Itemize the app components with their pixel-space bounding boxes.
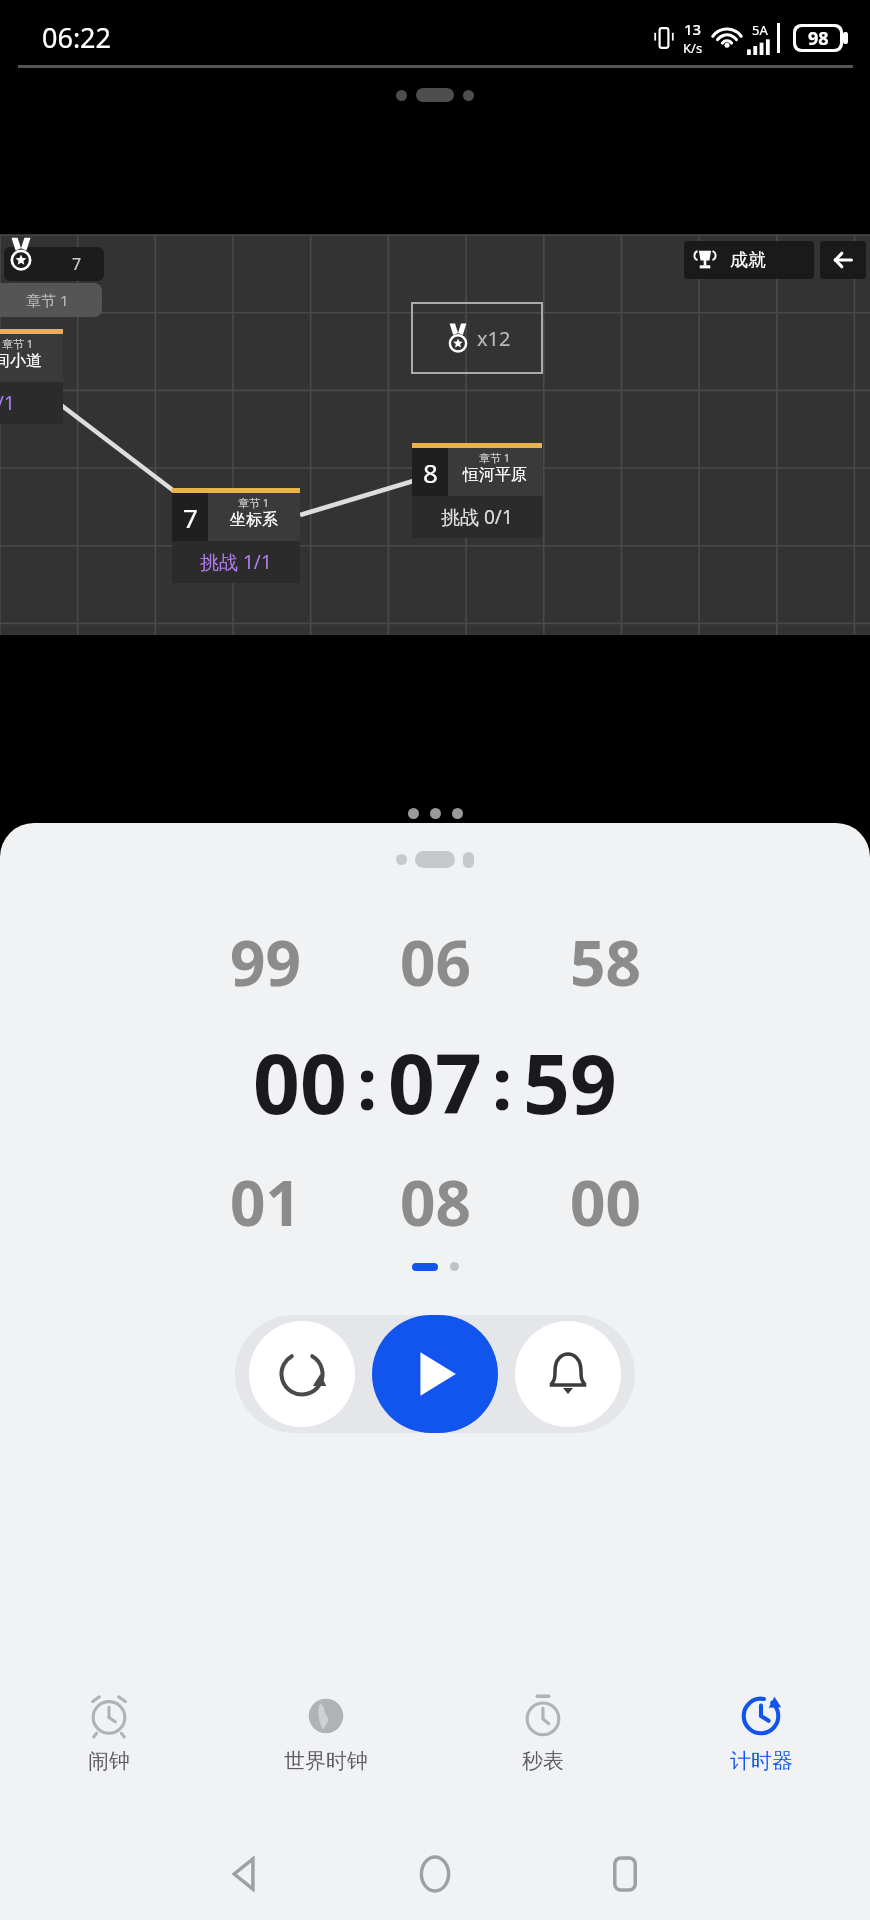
staticText: 挑战 0/1 — [441, 504, 513, 530]
staticText: : — [492, 1033, 513, 1131]
staticText: 00 — [570, 1160, 641, 1244]
staticText: 1/1 — [0, 390, 15, 416]
button[interactable]: 7 — [172, 488, 300, 583]
staticText: 章节 1 — [238, 495, 270, 510]
button[interactable]: Alarm sound — [515, 1321, 621, 1427]
staticText: 08 — [400, 1160, 471, 1244]
staticText: 06 — [400, 920, 471, 1004]
button[interactable]: 闹钟 — [0, 1678, 217, 1828]
button[interactable]: 计时器 — [652, 1678, 870, 1828]
staticText: 13 — [684, 19, 702, 39]
button[interactable]: Back — [820, 241, 866, 279]
button[interactable]: 秒表 — [434, 1678, 652, 1828]
button[interactable]: Recents — [580, 1829, 670, 1919]
button[interactable]: Start — [372, 1315, 498, 1433]
staticText: 间小道 — [0, 351, 42, 371]
staticText: 世界时钟 — [284, 1748, 368, 1774]
staticText: 98 — [808, 26, 829, 51]
staticText: 计时器 — [730, 1748, 793, 1774]
staticText: 挑战 1/1 — [200, 549, 272, 575]
button[interactable]: 8 — [412, 443, 542, 538]
staticText: 坐标系 — [230, 510, 278, 530]
staticText: 07 — [388, 1026, 482, 1138]
staticText: 99 — [230, 920, 301, 1004]
button[interactable]: Home — [390, 1829, 480, 1919]
button[interactable]: 6 — [0, 329, 63, 424]
staticText: 恒河平原 — [463, 465, 527, 485]
staticText: 章节 1 — [2, 336, 34, 351]
staticText: 00 — [253, 1026, 347, 1138]
staticText: : — [357, 1033, 378, 1131]
staticText: K/s — [683, 39, 703, 57]
button[interactable]: 世界时钟 — [217, 1678, 434, 1828]
staticText: 5A — [752, 21, 768, 39]
staticText: 06:22 — [42, 19, 112, 56]
staticText: 成就 — [730, 249, 766, 272]
staticText: 7 — [183, 500, 198, 535]
staticText: 闹钟 — [88, 1748, 130, 1774]
staticText: 59 — [523, 1026, 617, 1138]
staticText: 7 — [72, 253, 82, 275]
staticText: 58 — [570, 920, 641, 1004]
button[interactable]: 成就 — [684, 241, 814, 279]
staticText: 8 — [423, 455, 438, 490]
staticText: 章节 1 — [26, 290, 69, 310]
button[interactable]: Back — [200, 1829, 290, 1919]
staticText: x12 — [477, 325, 511, 352]
staticText: 01 — [230, 1160, 301, 1244]
staticText: 秒表 — [522, 1748, 564, 1774]
staticText: 章节 1 — [479, 450, 511, 465]
button[interactable]: Reset — [249, 1321, 355, 1427]
